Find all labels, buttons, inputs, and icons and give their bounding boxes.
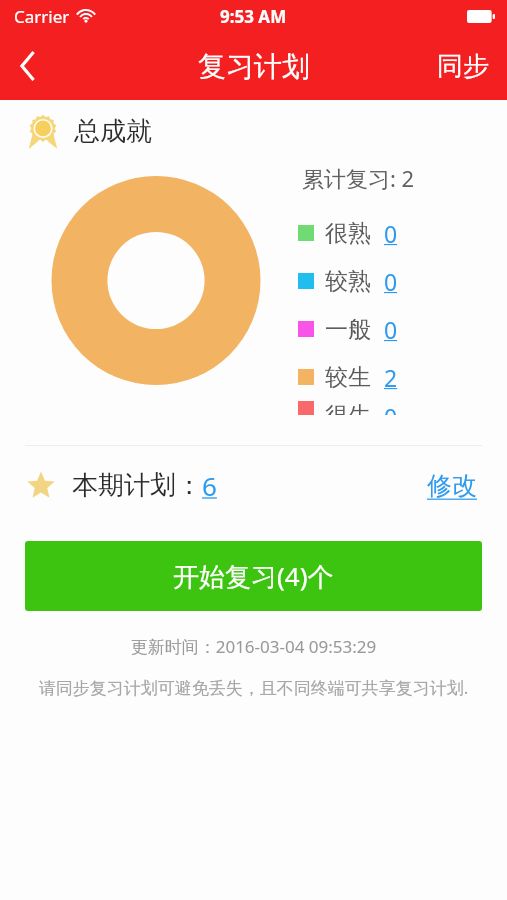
button[interactable]: 一般 — [298, 305, 398, 353]
staticText: 6 — [202, 468, 217, 503]
staticText: 复习计划 — [198, 49, 310, 84]
staticText: 请同步复习计划可避免丢失，且不同终端可共享复习计划. — [30, 676, 477, 699]
staticText: 开始复习(4)个 — [173, 558, 334, 594]
staticText: 很熟 — [325, 219, 371, 248]
button[interactable]: Back — [0, 32, 56, 100]
staticText: 一般 — [325, 315, 371, 344]
staticText: 0 — [384, 266, 398, 297]
staticText: 0 — [384, 314, 398, 345]
button[interactable]: 较生 — [298, 353, 398, 401]
staticText: 修改 — [427, 470, 477, 501]
button[interactable]: 同步 — [419, 32, 507, 100]
staticText: 很生 — [325, 401, 371, 415]
staticText: 更新时间：2016-03-04 09:53:29 — [0, 635, 507, 658]
button[interactable]: 开始复习(4)个 — [25, 541, 482, 611]
staticText: 0 — [384, 218, 398, 249]
staticText: 累计复习: 2 — [302, 163, 415, 193]
staticText: 总成就 — [74, 115, 152, 148]
staticText: 同步 — [437, 50, 489, 83]
staticText: Carrier — [14, 5, 70, 28]
staticText: 较生 — [325, 363, 371, 392]
staticText: 2 — [384, 362, 398, 393]
staticText: 本期计划： — [72, 469, 202, 502]
button[interactable]: 较熟 — [298, 257, 398, 305]
staticText: 0 — [384, 401, 398, 415]
button[interactable]: 修改 — [423, 466, 481, 505]
staticText: 9:53 AM — [220, 5, 287, 28]
button[interactable]: 很生 — [298, 401, 398, 415]
button[interactable]: 很熟 — [298, 209, 398, 257]
button[interactable]: 6 — [202, 468, 217, 503]
staticText: 较熟 — [325, 267, 371, 296]
